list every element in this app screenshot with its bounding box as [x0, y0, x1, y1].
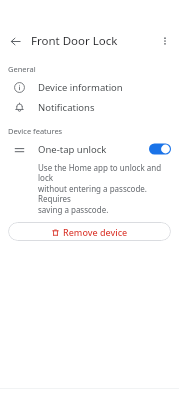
staticText: saving a passcode. — [38, 204, 109, 215]
staticText: General — [8, 64, 36, 74]
button[interactable]: More options — [155, 31, 175, 51]
staticText: Remove device — [63, 226, 128, 238]
button[interactable]: One-tap unlock toggle — [149, 143, 171, 155]
staticText: Device information — [38, 81, 123, 94]
staticText: without entering a passcode. Requires — [38, 183, 167, 204]
button[interactable]: Back — [5, 31, 25, 51]
button[interactable]: Remove device — [8, 222, 171, 241]
button[interactable]: Device information — [0, 77, 179, 97]
button[interactable]: One-tap unlock — [0, 139, 179, 159]
staticText: One-tap unlock — [38, 143, 107, 156]
staticText: Notifications — [38, 101, 95, 114]
button[interactable]: Notifications — [0, 97, 179, 117]
staticText: Front Door Lock — [31, 33, 118, 49]
staticText: Use the Home app to unlock and lock — [38, 162, 167, 183]
staticText: Device features — [8, 126, 63, 136]
